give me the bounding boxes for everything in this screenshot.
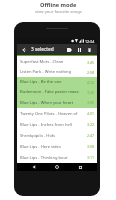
staticText: 3:05 <box>87 100 94 105</box>
staticText: Blue Lips - When your heart <box>20 100 74 106</box>
staticText: Blue Lips - Inches from hell <box>20 122 72 128</box>
button[interactable]: Recent apps <box>74 163 86 171</box>
button[interactable]: Blue Lips - When your heart <box>17 97 97 108</box>
staticText: 3:30 <box>87 90 94 95</box>
button[interactable]: Back <box>17 44 30 55</box>
staticText: Superfast Mots - Clean <box>20 59 64 65</box>
staticText: 4:01 <box>87 111 94 116</box>
staticText: 3:22 <box>87 122 94 127</box>
staticText: Listen Park - Write nothing <box>20 69 72 75</box>
staticText: Blue Lips - Be the one <box>20 79 62 85</box>
staticText: Offline mode <box>40 1 77 9</box>
button[interactable]: Archive <box>75 44 84 55</box>
button[interactable]: Budemoon - Fake pastor maas <box>17 87 97 97</box>
button[interactable]: Blue Lips - Inches from hell <box>17 119 97 130</box>
staticText: Blue Lips - Here sides <box>20 144 61 150</box>
button[interactable]: Blue Lips - Here sides <box>17 141 97 152</box>
button[interactable]: Blue Lips - Thinking bout <box>17 152 97 163</box>
staticText: Shrinkpipilo - Hids <box>20 133 55 139</box>
button[interactable]: Home <box>51 163 63 171</box>
button[interactable]: Listen Park - Write nothing <box>17 67 97 77</box>
staticText: 12:34 <box>85 39 95 44</box>
button[interactable]: Blue Lips - Be the one <box>17 77 97 87</box>
button[interactable]: Superfast Mots - Clean <box>17 57 97 67</box>
staticText: 4:12 <box>87 80 94 85</box>
staticText: 2:58 <box>87 70 94 75</box>
staticText: 2:47 <box>87 133 94 138</box>
staticText: 3:58 <box>87 144 94 149</box>
button[interactable]: Twenty One Pilots - Heaven of gold <box>17 108 97 119</box>
staticText: view your favorite songs <box>35 9 82 15</box>
staticText: Twenty One Pilots - Heaven of gold <box>20 111 87 117</box>
staticText: 3:45 <box>87 60 94 65</box>
button[interactable]: Shrinkpipilo - Hids <box>17 130 97 141</box>
staticText: 3 selected <box>31 46 54 53</box>
staticText: Budemoon - Fake pastor maas <box>20 89 79 95</box>
button[interactable]: Label <box>64 44 74 55</box>
button[interactable]: Delete <box>85 44 94 55</box>
button[interactable]: Back <box>28 163 40 171</box>
staticText: 3:11 <box>87 155 94 160</box>
staticText: Blue Lips - Thinking bout <box>20 155 68 161</box>
